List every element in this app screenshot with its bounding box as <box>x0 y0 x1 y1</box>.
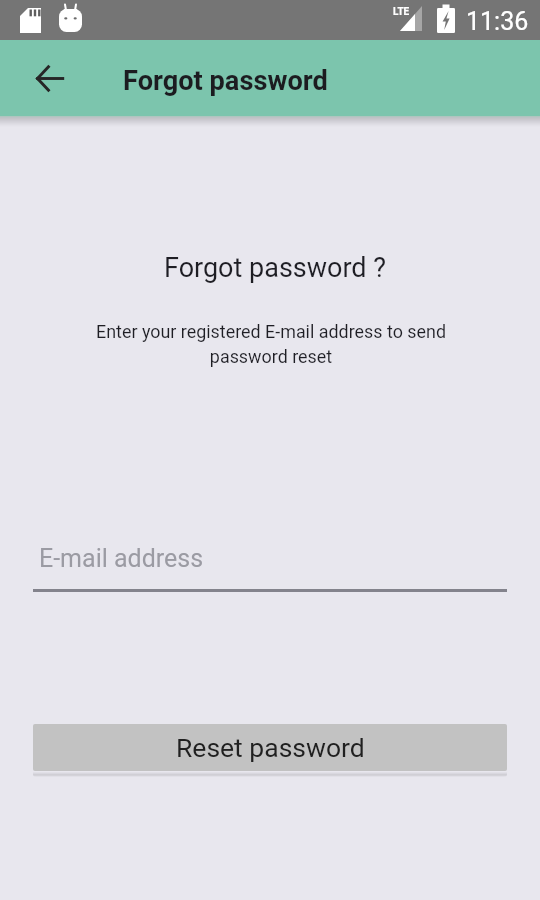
button[interactable]: E-mail address <box>33 531 507 589</box>
button[interactable]: Reset password <box>33 724 507 771</box>
staticText: Forgot password <box>123 65 328 97</box>
button[interactable]: Back <box>25 53 75 103</box>
staticText: Forgot password ? <box>164 252 387 284</box>
staticText: E-mail address <box>39 544 204 573</box>
staticText: Enter your registered E-mail address to … <box>96 321 446 368</box>
staticText: Reset password <box>176 732 365 763</box>
staticText: 11:36 <box>466 7 529 36</box>
staticText: LTE <box>393 6 410 18</box>
